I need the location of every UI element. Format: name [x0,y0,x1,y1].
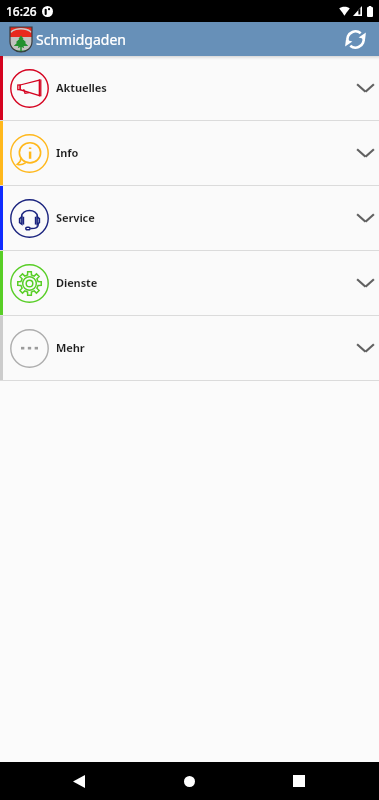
staticText: Aktuelles [56,80,107,95]
button[interactable]: Back [55,762,103,800]
button[interactable]: Home [165,762,213,800]
staticText: Info [56,145,79,160]
staticText: 16:26 [6,3,37,19]
button[interactable]: Dienste [0,251,379,315]
button[interactable]: Info [0,121,379,185]
staticText: Mehr [56,340,85,355]
button[interactable]: Mehr [0,316,379,380]
staticText: Schmidgaden [36,30,126,49]
button[interactable]: Aktuelles [0,56,379,120]
staticText: Dienste [56,275,98,290]
button[interactable]: Service [0,186,379,250]
staticText: Service [56,210,95,225]
button[interactable]: Refresh [333,22,377,56]
button[interactable]: Recents [275,762,323,800]
